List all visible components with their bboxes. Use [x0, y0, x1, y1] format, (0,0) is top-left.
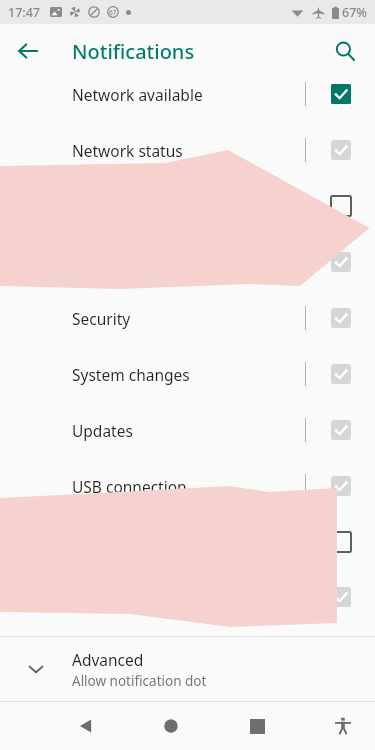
button[interactable]: [306, 234, 375, 290]
button[interactable]: Virtual keyboard: [0, 514, 375, 570]
button[interactable]: Security: [0, 290, 375, 346]
button[interactable]: Physical keyboard: [0, 178, 375, 234]
button[interactable]: [306, 514, 375, 570]
button[interactable]: [306, 346, 375, 402]
staticText: 67: [109, 8, 117, 17]
button[interactable]: Accessibility: [319, 702, 367, 750]
button[interactable]: [306, 458, 375, 514]
staticText: Network available: [72, 84, 305, 105]
button[interactable]: Network available: [0, 66, 375, 122]
staticText: Updates: [72, 420, 305, 441]
staticText: 17:47: [8, 4, 41, 21]
button[interactable]: Home: [147, 702, 195, 750]
button[interactable]: [306, 122, 375, 178]
button[interactable]: Back: [8, 31, 48, 71]
staticText: Advanced: [72, 649, 144, 670]
button[interactable]: USB connection: [0, 458, 375, 514]
staticText: USB connection: [72, 476, 305, 497]
button[interactable]: Network status: [0, 122, 375, 178]
button[interactable]: [306, 290, 375, 346]
button[interactable]: VPN status: [0, 570, 375, 624]
button[interactable]: [306, 402, 375, 458]
button[interactable]: Retail demo: [0, 234, 375, 290]
staticText: Notifications: [72, 38, 195, 65]
button[interactable]: Back: [62, 702, 110, 750]
button[interactable]: [306, 178, 375, 234]
staticText: System changes: [72, 364, 305, 385]
button[interactable]: Recent apps: [233, 702, 281, 750]
staticText: Allow notification dot: [72, 672, 207, 690]
button[interactable]: System changes: [0, 346, 375, 402]
button[interactable]: Updates: [0, 402, 375, 458]
button[interactable]: [306, 570, 375, 624]
staticText: Security: [72, 308, 305, 329]
staticText: Network status: [72, 140, 305, 161]
staticText: 67%: [342, 4, 367, 21]
button[interactable]: Advanced: [0, 637, 375, 701]
button[interactable]: [306, 66, 375, 122]
button[interactable]: Search: [325, 31, 365, 71]
